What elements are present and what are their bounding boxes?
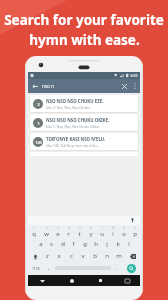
- staticText: o: [122, 230, 126, 238]
- staticText: p: [133, 230, 137, 238]
- staticText: 5: [79, 226, 81, 230]
- staticText: s: [50, 240, 53, 248]
- staticText: l: [128, 240, 130, 248]
- button[interactable]: g: [79, 238, 90, 250]
- button[interactable]: Back: [28, 275, 57, 286]
- staticText: ?123: [32, 266, 40, 271]
- button[interactable]: b: [89, 250, 101, 262]
- staticText: w: [44, 230, 49, 238]
- staticText: t: [78, 230, 81, 238]
- button[interactable]: Backspace: [125, 250, 140, 262]
- button[interactable]: v: [77, 250, 89, 262]
- staticText: 2: [46, 226, 48, 230]
- button[interactable]: Home: [57, 275, 86, 286]
- staticText: TOB'ONYE KASI NSO N'ELU.: [46, 136, 106, 142]
- button[interactable]: 5: [74, 225, 85, 238]
- button[interactable]: 2: [40, 225, 52, 238]
- button[interactable]: 3: [52, 225, 63, 238]
- staticText: z: [46, 252, 49, 260]
- staticText: j: [106, 240, 108, 248]
- staticText: g: [83, 240, 87, 248]
- staticText: a: [39, 240, 43, 248]
- staticText: u: [100, 230, 104, 238]
- staticText: 2: [37, 102, 40, 107]
- button[interactable]: 0: [129, 225, 140, 238]
- staticText: 140: [35, 140, 42, 145]
- button[interactable]: Search: [127, 264, 136, 273]
- button[interactable]: 9: [118, 225, 129, 238]
- staticText: Uku 1: Nso, Nso, Nso Chuku Okike.: [46, 124, 100, 128]
- button[interactable]: 4: [63, 225, 74, 238]
- button[interactable]: f: [68, 238, 79, 250]
- staticText: 1: [37, 121, 40, 126]
- button[interactable]: Recent apps: [86, 275, 115, 286]
- button[interactable]: Shift: [28, 250, 42, 262]
- staticText: 6: [90, 226, 92, 230]
- button[interactable]: s: [46, 238, 57, 250]
- button[interactable]: m: [113, 250, 125, 262]
- staticText: 8: [112, 226, 114, 230]
- button[interactable]: j: [101, 238, 112, 250]
- staticText: y: [89, 230, 93, 238]
- button[interactable]: h: [90, 238, 101, 250]
- button[interactable]: 1: [30, 114, 138, 131]
- staticText: 7: [101, 226, 103, 230]
- staticText: 4: [68, 226, 70, 230]
- staticText: 9: [123, 226, 125, 230]
- staticText: 6:53: [130, 73, 138, 78]
- staticText: q: [32, 230, 36, 238]
- button[interactable]: c: [65, 250, 77, 262]
- staticText: r: [67, 230, 70, 238]
- button[interactable]: z: [42, 250, 53, 262]
- staticText: i: [112, 230, 114, 238]
- staticText: x: [57, 252, 61, 260]
- staticText: hymn with ease.: [29, 31, 140, 49]
- staticText: Uku 140: Tob'Onye kasi nso n'elu...: [46, 143, 100, 147]
- staticText: .: [116, 265, 118, 272]
- button[interactable]: 140: [30, 133, 138, 150]
- staticText: b: [93, 252, 97, 260]
- button[interactable]: Back: [28, 79, 42, 93]
- staticText: 3: [57, 226, 59, 230]
- staticText: ,: [48, 265, 50, 272]
- button[interactable]: 6: [85, 225, 96, 238]
- staticText: c: [70, 252, 73, 260]
- button[interactable]: x: [53, 250, 65, 262]
- button[interactable]: k: [112, 238, 123, 250]
- staticText: 1: [33, 226, 35, 230]
- staticText: d: [61, 240, 65, 248]
- staticText: 0: [134, 226, 136, 230]
- staticText: NSO NSO NSO CHUKU EZE.: [46, 98, 104, 104]
- staticText: nso n: [42, 83, 54, 89]
- button[interactable]: 1: [28, 225, 40, 238]
- button[interactable]: Period: [112, 262, 122, 274]
- button[interactable]: 2: [30, 95, 138, 112]
- button[interactable]: Comma: [44, 262, 54, 274]
- button[interactable]: More options: [130, 79, 140, 93]
- button[interactable]: ?123: [28, 262, 44, 274]
- staticText: Search for your favorite: [4, 11, 164, 29]
- button[interactable]: l: [123, 238, 134, 250]
- staticText: Uku 2: Nso, Nso, Nso Chuku...: [46, 105, 92, 109]
- button[interactable]: 7: [96, 225, 107, 238]
- staticText: k: [116, 240, 120, 248]
- button[interactable]: n: [101, 250, 113, 262]
- button[interactable]: Switch keyboard: [115, 275, 140, 286]
- staticText: e: [56, 230, 60, 238]
- staticText: NSO NSO NSO CHUKU OKIKE.: [46, 117, 110, 123]
- staticText: m: [116, 252, 122, 260]
- staticText: v: [81, 252, 85, 260]
- staticText: n: [105, 252, 109, 260]
- button[interactable]: Voice input: [129, 217, 136, 224]
- staticText: h: [94, 240, 98, 248]
- button[interactable]: 8: [107, 225, 118, 238]
- button[interactable]: d: [57, 238, 68, 250]
- button[interactable]: Clear search: [118, 79, 130, 93]
- staticText: f: [72, 240, 75, 248]
- button[interactable]: a: [35, 238, 46, 250]
